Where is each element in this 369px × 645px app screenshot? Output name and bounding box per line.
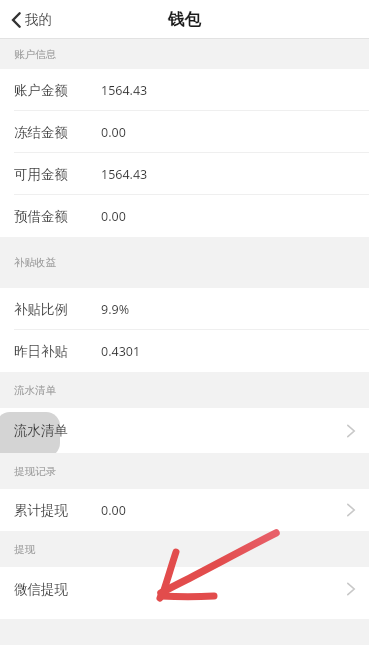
staticText: 流水清单 (14, 384, 56, 397)
button[interactable]: 可用金额 (0, 153, 369, 195)
staticText: 累计提现 (14, 502, 68, 519)
staticText: 1564.43 (101, 166, 148, 183)
staticText: 0.00 (101, 124, 126, 141)
button[interactable]: 预借金额 (0, 195, 369, 237)
button[interactable]: 补贴比例 (0, 288, 369, 330)
staticText: 0.00 (101, 208, 126, 225)
staticText: 0.4301 (101, 343, 141, 360)
staticText: 提现 (14, 543, 35, 556)
staticText: 昨日补贴 (14, 343, 68, 360)
staticText: 预借金额 (14, 208, 68, 225)
staticText: 提现记录 (14, 465, 56, 478)
staticText: 1564.43 (101, 82, 148, 99)
staticText: 补贴收益 (14, 256, 56, 269)
staticText: 9.9% (101, 301, 130, 318)
button[interactable]: 账户金额 (0, 69, 369, 111)
staticText: 可用金额 (14, 166, 68, 183)
staticText: 账户信息 (14, 48, 56, 61)
staticText: 冻结金额 (14, 124, 68, 141)
staticText: 补贴比例 (14, 301, 68, 318)
button[interactable]: 冻结金额 (0, 111, 369, 153)
staticText: 0.00 (101, 502, 126, 519)
staticText: 钱包 (168, 9, 201, 30)
button[interactable]: Back to 我的 (0, 7, 60, 32)
staticText: 微信提现 (14, 581, 68, 598)
button[interactable]: 昨日补贴 (0, 330, 369, 372)
staticText: 流水清单 (14, 422, 68, 439)
button[interactable]: 流水清单 (0, 408, 369, 453)
button[interactable]: 微信提现 (0, 567, 369, 611)
staticText: 账户金额 (14, 82, 68, 99)
staticText: 我的 (25, 11, 52, 28)
button[interactable]: 累计提现 (0, 489, 369, 531)
